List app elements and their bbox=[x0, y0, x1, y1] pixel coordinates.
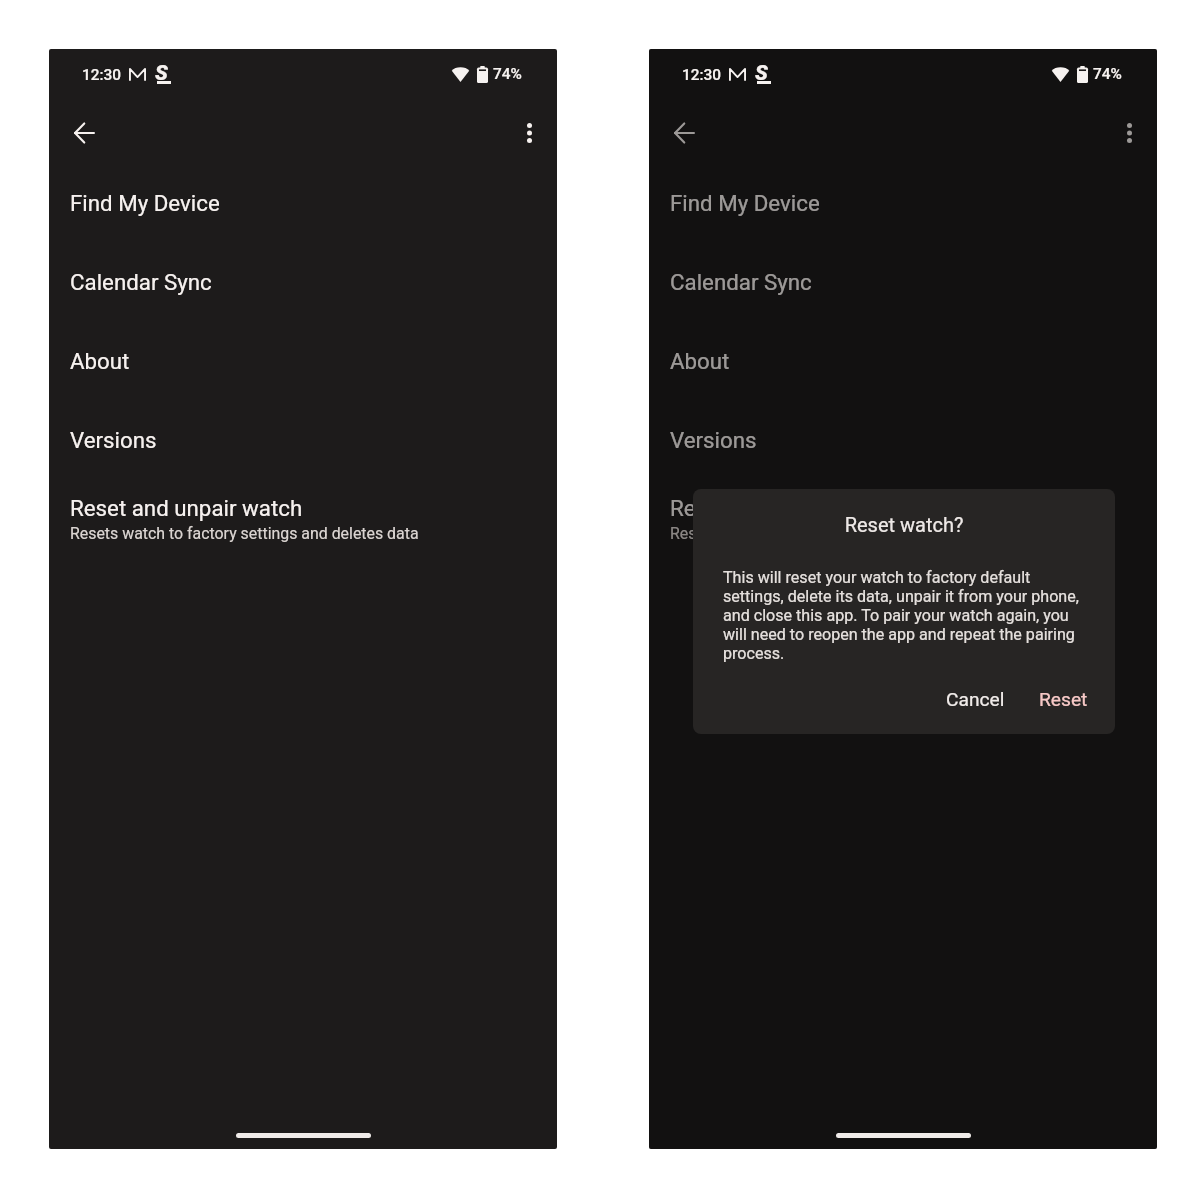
button[interactable]: Find My Device bbox=[49, 190, 557, 216]
button[interactable]: Calendar Sync bbox=[49, 269, 557, 295]
staticText: This will reset your watch to factory de… bbox=[723, 568, 1085, 663]
staticText: Versions bbox=[70, 427, 157, 453]
button[interactable]: Reset and unpair watch bbox=[649, 495, 1157, 543]
button[interactable]: Back bbox=[62, 111, 106, 155]
button[interactable]: Calendar Sync bbox=[649, 269, 1157, 295]
button[interactable]: More options bbox=[507, 111, 551, 155]
button[interactable]: Versions bbox=[649, 427, 1157, 453]
button[interactable]: About bbox=[49, 348, 557, 374]
button[interactable]: About bbox=[649, 348, 1157, 374]
staticText: S bbox=[155, 61, 168, 80]
button[interactable]: Versions bbox=[49, 427, 557, 453]
staticText: 74% bbox=[1093, 65, 1122, 83]
staticText: Calendar Sync bbox=[670, 269, 812, 295]
staticText: Reset and unpair watch bbox=[70, 495, 303, 521]
button[interactable]: More options bbox=[1107, 111, 1151, 155]
button[interactable]: Reset bbox=[1029, 680, 1098, 719]
button[interactable]: Back bbox=[662, 111, 706, 155]
staticText: Find My Device bbox=[70, 190, 220, 216]
staticText: About bbox=[670, 348, 730, 374]
button[interactable]: Reset and unpair watch bbox=[49, 495, 557, 543]
staticText: Reset bbox=[1039, 688, 1088, 711]
staticText: About bbox=[70, 348, 130, 374]
staticText: Cancel bbox=[946, 688, 1005, 711]
staticText: Resets watch to factory settings and del… bbox=[670, 524, 1019, 543]
staticText: Versions bbox=[670, 427, 757, 453]
staticText: 12:30 bbox=[682, 66, 722, 84]
staticText: Resets watch to factory settings and del… bbox=[70, 524, 419, 543]
staticText: S bbox=[755, 61, 768, 80]
staticText: Find My Device bbox=[670, 190, 820, 216]
staticText: Reset and unpair watch bbox=[670, 495, 903, 521]
button[interactable]: Find My Device bbox=[649, 190, 1157, 216]
staticText: Calendar Sync bbox=[70, 269, 212, 295]
staticText: Reset watch? bbox=[723, 513, 1085, 536]
staticText: 74% bbox=[493, 65, 522, 83]
staticText: 12:30 bbox=[82, 66, 122, 84]
button[interactable]: Cancel bbox=[936, 680, 1015, 719]
